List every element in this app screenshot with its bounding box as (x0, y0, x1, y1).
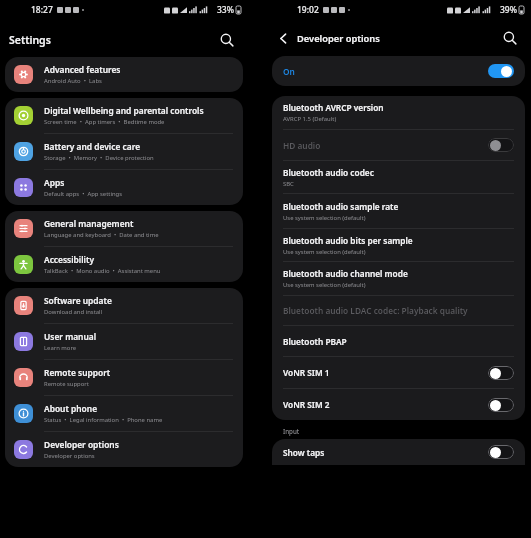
button[interactable]: Search (500, 28, 520, 48)
staticText: Bluetooth audio codec (283, 167, 374, 178)
staticText: Battery and device care (44, 141, 141, 152)
staticText: AVRCP 1.5 (Default) (283, 115, 337, 123)
staticText: Settings (9, 33, 51, 47)
button[interactable]: On (272, 56, 525, 86)
staticText: Developer options (44, 452, 95, 460)
staticText: Accessibility (44, 254, 94, 265)
staticText: Bluetooth audio LDAC codec: Playback qua… (283, 305, 468, 316)
button[interactable]: Off (488, 398, 514, 412)
staticText: About phone (44, 403, 98, 414)
button[interactable]: Search settings (217, 30, 237, 50)
button[interactable]: Bluetooth audio bits per sample (272, 229, 525, 262)
staticText: Show taps (283, 447, 325, 458)
staticText: Language and keyboard • Date and time (44, 231, 159, 239)
button[interactable]: Bluetooth AVRCP version (272, 96, 525, 130)
button[interactable]: VoNR SIM 2 (272, 389, 525, 420)
staticText: Input (283, 427, 300, 435)
staticText: Use system selection (default) (283, 214, 366, 222)
staticText: Download and install (44, 308, 103, 316)
button[interactable]: Bluetooth audio channel mode (272, 262, 525, 296)
staticText: HD audio (283, 140, 321, 151)
button[interactable]: Off (488, 445, 514, 459)
staticText: Use system selection (default) (283, 281, 366, 289)
button[interactable]: Apps (5, 170, 243, 205)
button[interactable]: About phone (5, 396, 243, 432)
staticText: Learn more (44, 344, 77, 352)
staticText: Status • Legal information • Phone name (44, 416, 163, 424)
staticText: 18:27 (31, 4, 53, 16)
button[interactable]: Battery and device care (5, 134, 243, 170)
staticText: Software update (44, 295, 112, 306)
staticText: General management (44, 218, 134, 229)
staticText: TalkBack • Mono audio • Assistant menu (44, 267, 161, 275)
button[interactable]: Advanced features (5, 57, 243, 92)
staticText: Bluetooth audio channel mode (283, 268, 408, 279)
staticText: Bluetooth AVRCP version (283, 102, 384, 113)
staticText: User manual (44, 331, 97, 342)
staticText: Remote support (44, 380, 89, 388)
staticText: On (283, 66, 295, 77)
staticText: Screen time • App timers • Bedtime mode (44, 118, 165, 126)
button[interactable]: General management (5, 211, 243, 247)
staticText: VoNR SIM 1 (283, 367, 330, 378)
button[interactable]: VoNR SIM 1 (272, 357, 525, 389)
button[interactable]: Remote support (5, 360, 243, 396)
staticText: Apps (44, 177, 65, 188)
staticText: Remote support (44, 367, 111, 378)
button[interactable]: Bluetooth PBAP (272, 326, 525, 357)
button[interactable]: Accessibility (5, 247, 243, 282)
staticText: Bluetooth audio bits per sample (283, 235, 413, 246)
button[interactable]: On (488, 64, 514, 78)
staticText: Storage • Memory • Device protection (44, 154, 154, 162)
staticText: Developer options (44, 439, 119, 450)
staticText: 39% (500, 4, 517, 16)
button[interactable]: Back (273, 28, 293, 48)
button[interactable]: User manual (5, 324, 243, 360)
button[interactable]: Off (488, 366, 514, 380)
staticText: 33% (217, 4, 234, 16)
staticText: Developer options (297, 32, 380, 45)
button[interactable]: Digital Wellbeing and parental controls (5, 98, 243, 134)
button[interactable]: Bluetooth audio sample rate (272, 194, 525, 229)
button[interactable]: Developer options (5, 432, 243, 467)
button[interactable]: Bluetooth audio codec (272, 161, 525, 194)
button[interactable]: Off (488, 138, 514, 152)
staticText: Digital Wellbeing and parental controls (44, 105, 204, 116)
staticText: Use system selection (default) (283, 248, 366, 256)
staticText: Advanced features (44, 64, 121, 75)
staticText: VoNR SIM 2 (283, 399, 330, 410)
button[interactable]: Bluetooth audio LDAC codec: Playback qua… (272, 296, 525, 326)
staticText: Android Auto • Labs (44, 77, 102, 85)
staticText: 19:02 (297, 4, 319, 16)
button[interactable]: HD audio (272, 130, 525, 161)
button[interactable]: Show taps (272, 439, 525, 465)
staticText: SBC (283, 180, 294, 188)
staticText: Bluetooth PBAP (283, 336, 347, 347)
staticText: Bluetooth audio sample rate (283, 201, 399, 212)
button[interactable]: Software update (5, 288, 243, 324)
staticText: Default apps • App settings (44, 190, 123, 198)
